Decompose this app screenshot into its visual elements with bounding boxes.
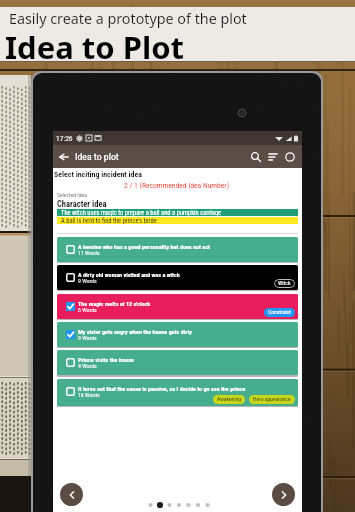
staticText: A heroine who has a good personality but… <box>78 243 210 250</box>
button[interactable]: A dirty old woman visited and was a witc… <box>57 265 298 290</box>
staticText: A dirty old woman visited and was a witc… <box>78 271 180 278</box>
button[interactable]: The witch uses magic to prepare a ball a… <box>57 209 298 216</box>
button[interactable]: Prince visits the house <box>57 350 298 375</box>
staticText: 2 / 1 (Recommended Idea Number) <box>124 181 230 190</box>
staticText: 9 Words <box>78 335 97 342</box>
button[interactable]: Search <box>249 150 263 164</box>
staticText: Witch <box>278 280 291 287</box>
staticText: My sister gets angry when the house gets… <box>78 328 192 335</box>
staticText: Prince visits the house <box>78 356 134 363</box>
staticText: 9 Words <box>78 278 97 285</box>
staticText: 11 Words <box>78 250 100 257</box>
staticText: Awakening <box>217 396 241 403</box>
staticText: Hero appearance <box>253 396 291 403</box>
staticText: Select inciting incident idea <box>54 170 142 179</box>
staticText: 4 Words <box>78 363 97 370</box>
button[interactable]: A heroine who has a good personality but… <box>57 237 298 262</box>
button[interactable]: The magic melts at 12 o'clock <box>57 294 298 319</box>
button[interactable]: Previous <box>60 483 83 506</box>
staticText: The witch uses magic to prepare a ball a… <box>61 209 222 216</box>
button[interactable]: A ball is held to find the prince's brid… <box>57 217 298 224</box>
staticText: The magic melts at 12 o'clock <box>78 300 151 307</box>
staticText: It turns out that the cause is passive, … <box>78 385 246 392</box>
staticText: 17:26 <box>56 134 73 143</box>
button[interactable]: My sister gets angry when the house gets… <box>57 322 298 347</box>
staticText: 6 Words <box>78 307 97 314</box>
button[interactable]: Back <box>57 150 71 164</box>
staticText: A ball is held to find the prince's brid… <box>61 217 157 224</box>
button[interactable]: Help <box>283 150 297 164</box>
staticText: Constraint <box>268 309 291 316</box>
staticText: Selected Idea <box>57 192 87 199</box>
button[interactable]: Next <box>272 483 295 506</box>
staticText: Character idea <box>57 199 107 209</box>
staticText: Idea to Plot <box>5 26 184 68</box>
button[interactable]: It turns out that the cause is passive, … <box>57 379 298 406</box>
staticText: Idea to plot <box>75 151 119 162</box>
button[interactable]: Sort <box>266 150 280 164</box>
staticText: Easily create a prototype of the plot <box>9 9 247 28</box>
staticText: 16 Words <box>78 392 100 399</box>
